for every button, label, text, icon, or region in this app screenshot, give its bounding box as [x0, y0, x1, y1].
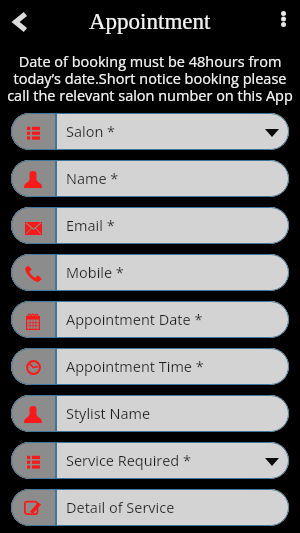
staticText: Salon * — [66, 122, 265, 142]
staticText: Mobile * — [66, 263, 289, 283]
button[interactable]: More options — [270, 6, 296, 32]
staticText: Appointment Time * — [66, 357, 289, 377]
staticText: Appointment — [89, 9, 211, 34]
staticText: Detail of Service — [66, 498, 289, 518]
button[interactable]: Email * — [11, 207, 289, 244]
button[interactable]: Name * — [11, 160, 289, 197]
staticText: Service Required * — [66, 451, 265, 471]
staticText: Name * — [66, 169, 289, 189]
staticText: Stylist Name — [66, 404, 289, 424]
staticText: Email * — [66, 216, 289, 236]
button[interactable]: Stylist Name — [11, 395, 289, 432]
button[interactable]: Appointment Date * — [11, 301, 289, 338]
button[interactable]: Mobile * — [11, 254, 289, 291]
button[interactable]: Salon * — [11, 113, 289, 150]
button[interactable]: Back — [5, 8, 33, 36]
button[interactable]: Service Required * — [11, 442, 289, 479]
button[interactable]: Appointment Time * — [11, 348, 289, 385]
staticText: Date of booking must be 48hours from tod… — [4, 52, 296, 105]
staticText: Appointment Date * — [66, 310, 289, 330]
button[interactable]: Detail of Service — [11, 489, 289, 526]
